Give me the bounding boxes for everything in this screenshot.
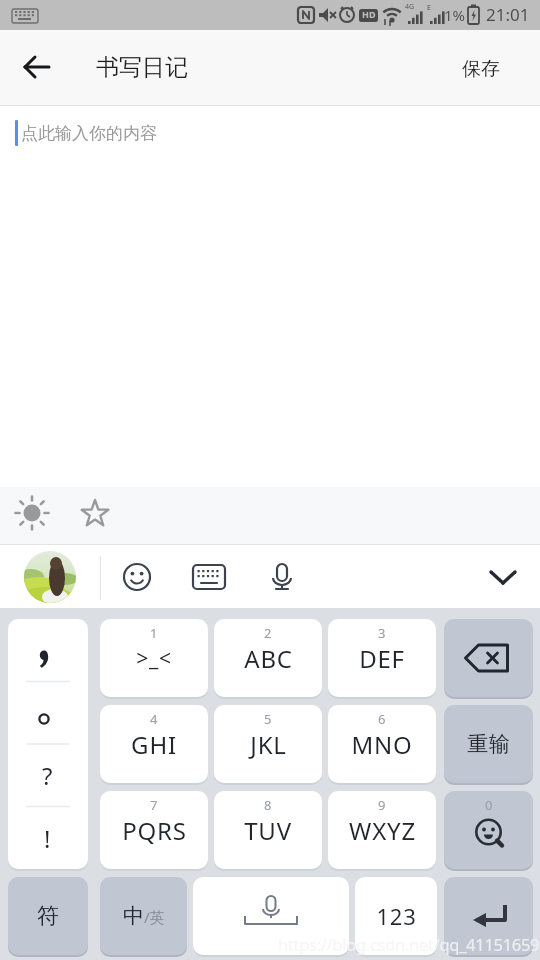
button[interactable]: >_< <box>100 619 208 697</box>
staticText: ? <box>42 759 53 792</box>
button[interactable] <box>185 553 233 601</box>
button[interactable]: 重输 <box>444 705 533 783</box>
staticText: DEF <box>359 642 405 675</box>
button[interactable] <box>13 43 61 91</box>
staticText: 重输 <box>467 731 511 757</box>
staticText: 符 <box>37 902 60 930</box>
staticText: 保存 <box>462 57 500 81</box>
staticText: HD <box>362 8 376 20</box>
button[interactable]: ? <box>8 619 88 869</box>
staticText: 6 <box>378 710 386 728</box>
staticText: https://blog.csdn.net/qq_41151659 <box>278 933 540 955</box>
staticText: ABC <box>244 642 293 675</box>
button[interactable]: 符 <box>8 877 88 955</box>
staticText: 4 <box>150 710 158 728</box>
staticText: ! <box>44 822 51 855</box>
staticText: 9 <box>378 796 386 814</box>
staticText: 中/英 <box>123 903 165 929</box>
button[interactable] <box>71 489 119 537</box>
staticText: 7 <box>150 796 158 814</box>
staticText: 1 <box>150 624 158 642</box>
button[interactable] <box>258 553 306 601</box>
staticText: 8 <box>264 796 272 814</box>
button[interactable] <box>444 877 533 955</box>
staticText: GHI <box>131 728 177 761</box>
button[interactable]: TUV <box>214 791 322 869</box>
staticText: JKL <box>250 728 287 761</box>
staticText: 3 <box>378 624 386 642</box>
staticText: 21:01 <box>486 3 530 26</box>
button[interactable]: GHI <box>100 705 208 783</box>
button[interactable]: 123 <box>355 877 437 955</box>
button[interactable] <box>24 551 76 603</box>
staticText: 123 <box>376 901 417 931</box>
button[interactable]: 0 <box>444 791 533 869</box>
staticText: 点此输入你的内容 <box>21 123 157 144</box>
staticText: 1% <box>444 5 466 25</box>
button[interactable]: 中/英 <box>100 877 187 955</box>
button[interactable] <box>193 877 349 955</box>
staticText: MNO <box>351 728 413 761</box>
button[interactable] <box>444 619 533 697</box>
staticText: WXYZ <box>349 814 416 847</box>
staticText: TUV <box>244 814 292 847</box>
button[interactable] <box>113 553 161 601</box>
staticText: >_< <box>136 644 172 673</box>
button[interactable] <box>479 553 527 601</box>
button[interactable]: MNO <box>328 705 436 783</box>
button[interactable] <box>8 489 56 537</box>
button[interactable]: WXYZ <box>328 791 436 869</box>
button[interactable]: ABC <box>214 619 322 697</box>
staticText: PQRS <box>122 814 187 847</box>
button[interactable]: DEF <box>328 619 436 697</box>
staticText: 2 <box>264 624 272 642</box>
staticText: E <box>427 3 431 13</box>
staticText: 4G <box>405 2 415 12</box>
staticText: 5 <box>264 710 272 728</box>
button[interactable]: PQRS <box>100 791 208 869</box>
button[interactable]: 保存 <box>441 44 521 94</box>
button[interactable]: JKL <box>214 705 322 783</box>
staticText: 书写日记 <box>96 53 188 82</box>
staticText: 0 <box>485 796 493 814</box>
